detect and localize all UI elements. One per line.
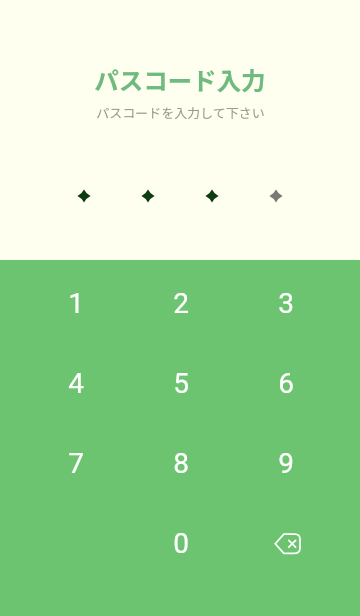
button[interactable]: 2 xyxy=(128,263,233,343)
staticText: パスコードを入力して下さい xyxy=(96,103,265,122)
button[interactable]: Delete last digit xyxy=(233,503,338,583)
staticText: 1 xyxy=(68,287,84,320)
staticText: パスコード入力 xyxy=(94,62,266,97)
staticText: 0 xyxy=(173,527,189,560)
staticText: 8 xyxy=(173,447,189,480)
staticText: 4 xyxy=(68,367,84,400)
button[interactable]: 9 xyxy=(233,423,338,503)
staticText: 9 xyxy=(278,447,294,480)
button[interactable]: 8 xyxy=(128,423,233,503)
button[interactable]: 6 xyxy=(233,343,338,423)
button[interactable]: 0 xyxy=(128,503,233,583)
staticText: 2 xyxy=(173,287,189,320)
button[interactable]: 1 xyxy=(23,263,128,343)
button[interactable]: 7 xyxy=(23,423,128,503)
staticText: 3 xyxy=(278,287,294,320)
button[interactable]: 4 xyxy=(23,343,128,423)
staticText: 6 xyxy=(278,367,294,400)
button[interactable]: 3 xyxy=(233,263,338,343)
staticText: 5 xyxy=(173,367,189,400)
staticText: 7 xyxy=(68,447,84,480)
button[interactable]: 5 xyxy=(128,343,233,423)
